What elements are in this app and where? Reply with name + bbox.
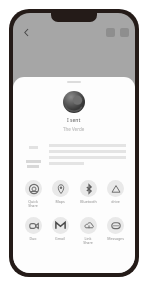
staticText: Messages bbox=[107, 236, 124, 241]
button[interactable]: More options bbox=[120, 28, 129, 37]
button[interactable]: Quick Share bbox=[20, 180, 46, 209]
staticText: Maps bbox=[55, 199, 65, 204]
button[interactable]: drive bbox=[102, 180, 128, 204]
staticText: I sent bbox=[67, 117, 81, 124]
staticText: Bluetooth bbox=[80, 199, 97, 204]
button[interactable]: Link Share bbox=[75, 217, 101, 246]
button[interactable]: Messages bbox=[102, 217, 128, 241]
staticText: The Verde bbox=[63, 126, 85, 132]
button[interactable]: Back bbox=[19, 25, 33, 39]
button[interactable]: Maps bbox=[47, 180, 73, 204]
staticText: Duo bbox=[29, 236, 37, 241]
staticText: drive bbox=[111, 199, 120, 204]
staticText: Link Share bbox=[83, 236, 93, 246]
staticText: Quick Share bbox=[28, 199, 38, 209]
button[interactable]: Duo bbox=[20, 217, 46, 241]
button[interactable]: Bluetooth bbox=[75, 180, 101, 204]
staticText: Gmail bbox=[55, 236, 65, 241]
button[interactable]: Gmail bbox=[47, 217, 73, 241]
button[interactable]: Edit bbox=[106, 28, 115, 37]
button[interactable]: Profile photo bbox=[63, 91, 85, 113]
